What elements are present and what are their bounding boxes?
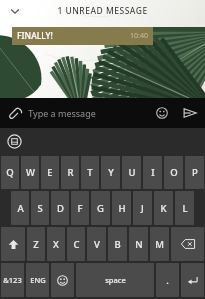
button[interactable]: R xyxy=(61,156,79,189)
staticText: R xyxy=(67,166,74,179)
button[interactable]: A xyxy=(11,191,29,225)
staticText: C xyxy=(73,238,80,251)
button[interactable]: U xyxy=(122,156,141,189)
button[interactable]: X xyxy=(47,227,65,261)
button[interactable]: Q xyxy=(1,156,19,189)
button[interactable]: Backspace xyxy=(171,227,204,261)
button[interactable]: V xyxy=(87,227,106,261)
button[interactable]: Send xyxy=(175,98,205,128)
staticText: E xyxy=(47,166,53,179)
button[interactable]: J xyxy=(133,191,152,225)
button[interactable]: B xyxy=(108,227,127,261)
button[interactable]: K xyxy=(154,191,173,225)
button[interactable]: Emoji xyxy=(149,98,175,128)
button[interactable]: F xyxy=(71,191,89,225)
staticText: 10:40 xyxy=(130,31,148,41)
staticText: T xyxy=(87,166,93,179)
button[interactable]: G xyxy=(91,191,110,225)
button[interactable]: Keyboard settings xyxy=(1,128,27,154)
staticText: Z xyxy=(33,238,39,251)
button[interactable]: M xyxy=(150,227,169,261)
button[interactable]: Emoji xyxy=(51,263,74,297)
staticText: G xyxy=(97,202,104,215)
button[interactable]: Type a message xyxy=(28,98,149,128)
button[interactable]: T xyxy=(81,156,99,189)
button[interactable]: FINALLY! xyxy=(12,27,153,45)
staticText: Y xyxy=(108,166,114,179)
staticText: . xyxy=(166,274,169,287)
button[interactable]: P xyxy=(185,156,204,189)
button[interactable]: Z xyxy=(27,227,45,261)
button[interactable]: Y xyxy=(101,156,120,189)
staticText: S xyxy=(37,202,43,215)
button[interactable]: . xyxy=(156,263,179,297)
staticText: O xyxy=(170,166,178,179)
button[interactable]: N xyxy=(129,227,148,261)
staticText: space xyxy=(105,275,126,285)
staticText: X xyxy=(53,238,59,251)
staticText: U xyxy=(128,166,136,179)
staticText: L xyxy=(182,202,188,215)
staticText: M xyxy=(155,238,164,251)
staticText: B xyxy=(114,238,121,251)
staticText: H xyxy=(118,202,126,215)
staticText: W xyxy=(26,166,35,179)
staticText: FINALLY! xyxy=(17,30,53,42)
button[interactable]: Attach xyxy=(0,98,28,128)
button[interactable]: space xyxy=(76,263,154,297)
staticText: A xyxy=(17,202,24,215)
staticText: N xyxy=(135,238,143,251)
staticText: ENG xyxy=(30,275,46,285)
button[interactable]: Collapse xyxy=(0,0,30,22)
button[interactable]: Enter xyxy=(181,263,204,297)
staticText: 1 UNREAD MESSAGE xyxy=(57,5,148,17)
button[interactable]: D xyxy=(51,191,69,225)
staticText: P xyxy=(192,166,198,179)
button[interactable]: H xyxy=(112,191,131,225)
button[interactable]: I xyxy=(143,156,162,189)
button[interactable]: O xyxy=(164,156,183,189)
staticText: J xyxy=(141,202,144,215)
button[interactable]: Shift xyxy=(1,227,25,261)
button[interactable]: S xyxy=(31,191,49,225)
staticText: V xyxy=(94,238,100,251)
staticText: F xyxy=(77,202,83,215)
button[interactable]: W xyxy=(21,156,39,189)
button[interactable]: L xyxy=(175,191,194,225)
button[interactable]: E xyxy=(41,156,59,189)
staticText: D xyxy=(57,202,64,215)
button[interactable]: C xyxy=(67,227,85,261)
staticText: &123 xyxy=(3,275,22,285)
staticText: K xyxy=(160,202,167,215)
staticText: Type a message xyxy=(28,107,96,119)
staticText: Q xyxy=(6,166,14,179)
button[interactable]: &123 xyxy=(1,263,24,297)
button[interactable]: ENG xyxy=(26,263,49,297)
staticText: I xyxy=(151,166,155,179)
